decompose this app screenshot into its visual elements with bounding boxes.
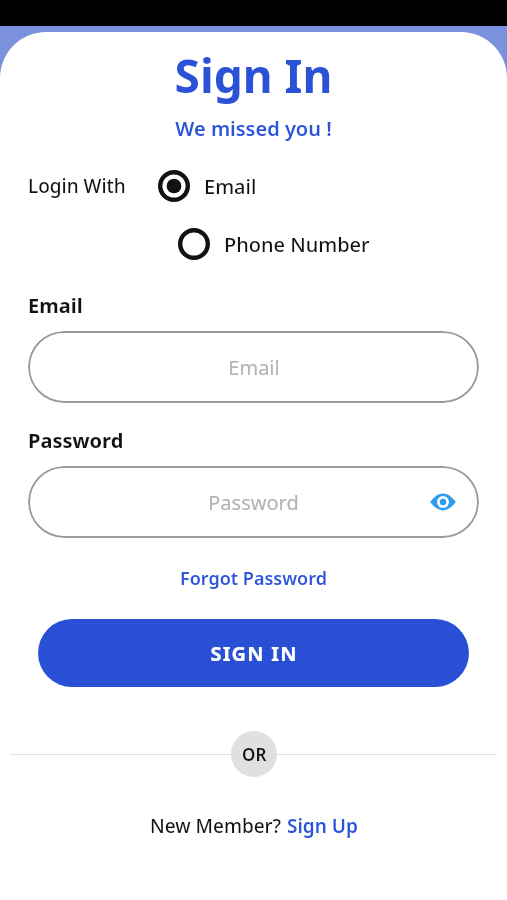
button[interactable]: SIGN IN — [38, 619, 469, 687]
button[interactable]: Sign Up — [287, 813, 358, 839]
staticText: Email — [28, 292, 507, 319]
staticText: OR — [242, 743, 267, 766]
button[interactable]: Password — [28, 466, 479, 538]
staticText: Forgot Password — [180, 566, 327, 591]
staticText: We missed you ! — [0, 115, 507, 142]
staticText: Phone Number — [224, 231, 370, 258]
button[interactable]: Phone Number — [176, 226, 372, 262]
staticText: Email — [204, 173, 257, 200]
staticText: Password — [208, 489, 299, 516]
staticText: SIGN IN — [210, 640, 298, 667]
staticText: Sign In — [0, 44, 507, 107]
button[interactable]: Email — [28, 331, 479, 403]
staticText: Login With — [28, 173, 126, 199]
button[interactable]: Show password — [425, 484, 461, 520]
staticText: Email — [228, 354, 280, 381]
staticText: New Member? — [150, 813, 287, 839]
staticText: Password — [28, 427, 507, 454]
button[interactable]: Forgot Password — [0, 566, 507, 591]
button[interactable]: Email — [156, 168, 259, 204]
staticText: Sign Up — [287, 813, 358, 839]
